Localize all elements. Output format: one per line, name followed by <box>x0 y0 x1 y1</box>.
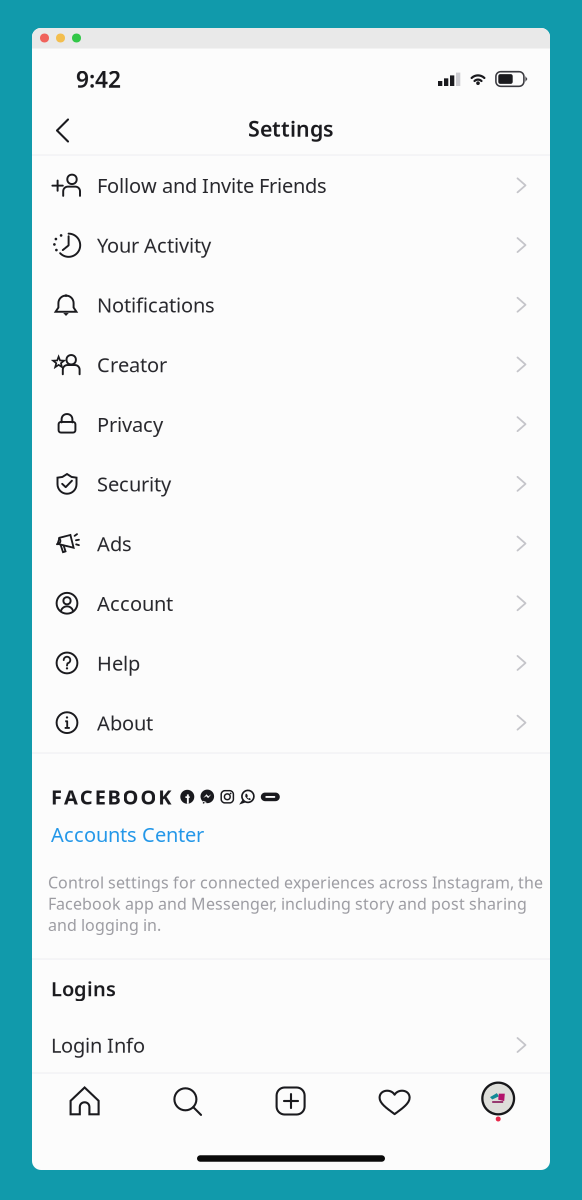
staticText: F <box>51 783 62 810</box>
staticText: Privacy <box>97 411 163 437</box>
button[interactable]: Profile <box>446 1081 550 1121</box>
staticText: C <box>80 783 93 810</box>
staticText: E <box>95 783 106 810</box>
staticText: O <box>140 783 156 810</box>
staticText: O <box>122 783 138 810</box>
staticText: Logins <box>51 975 116 1002</box>
staticText: About <box>97 709 153 736</box>
staticText: B <box>108 783 121 810</box>
button[interactable]: Privacy <box>32 394 550 454</box>
button[interactable]: New post <box>239 1084 343 1118</box>
button[interactable]: Back <box>47 108 87 148</box>
staticText: Creator <box>97 351 167 378</box>
staticText: Help <box>97 650 140 676</box>
staticText: K <box>158 783 171 810</box>
staticText: Account <box>97 590 173 617</box>
staticText: Your Activity <box>97 232 211 258</box>
button[interactable]: Help <box>32 633 550 693</box>
button[interactable]: Security <box>32 454 550 514</box>
button[interactable]: Accounts Center <box>32 810 550 857</box>
button[interactable]: Your Activity <box>32 215 550 275</box>
staticText: Accounts Center <box>51 821 204 848</box>
staticText: Follow and Invite Friends <box>97 172 327 199</box>
button[interactable]: Ads <box>32 514 550 573</box>
staticText: Notifications <box>97 291 215 318</box>
button[interactable]: Activity <box>343 1084 446 1118</box>
staticText: Control settings for connected experienc… <box>48 872 543 935</box>
button[interactable]: Creator <box>32 335 550 394</box>
button[interactable]: Search <box>136 1084 239 1118</box>
button[interactable]: Account <box>32 573 550 633</box>
button[interactable]: Follow and Invite Friends <box>32 155 550 215</box>
button[interactable]: Notifications <box>32 275 550 335</box>
staticText: A <box>64 783 78 810</box>
staticText: Login Info <box>51 1032 145 1058</box>
button[interactable]: About <box>32 693 550 752</box>
staticText: 9:42 <box>76 64 121 94</box>
staticText: Ads <box>97 530 132 557</box>
staticText: Settings <box>248 114 334 143</box>
staticText: Security <box>97 471 171 497</box>
button[interactable]: Home <box>32 1084 136 1118</box>
button[interactable]: Login Info <box>32 1017 550 1072</box>
